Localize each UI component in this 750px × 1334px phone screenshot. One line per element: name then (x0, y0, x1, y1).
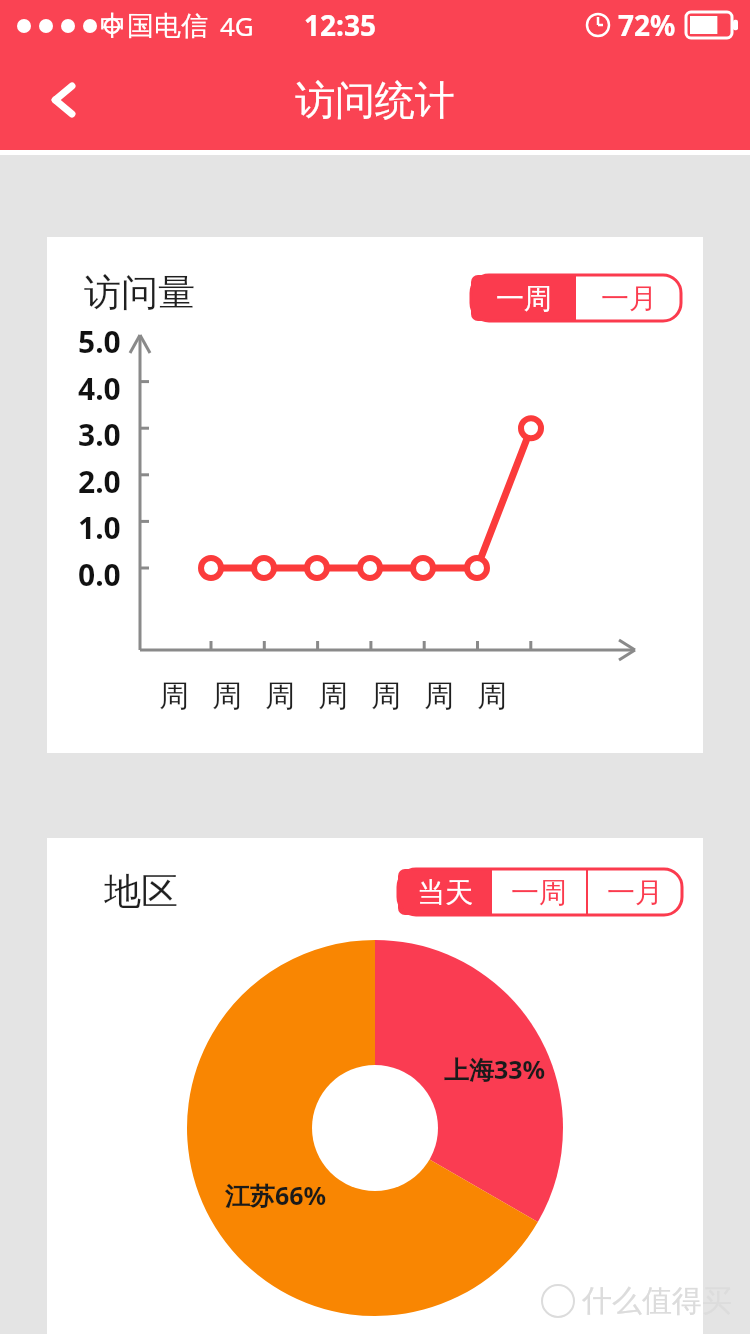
staticText: 周五 (371, 677, 424, 715)
staticText: 1.0 (78, 507, 121, 548)
staticText: 当天 (417, 875, 473, 910)
staticText: 上海33% (444, 1052, 546, 1086)
staticText: 周三 (265, 677, 318, 715)
staticText: 4G (220, 8, 254, 43)
other: Battery (686, 12, 738, 38)
staticText: 中国电信 (100, 9, 208, 43)
staticText: 0.0 (78, 554, 121, 595)
staticText: 周四 (318, 677, 371, 715)
staticText: 3.0 (78, 414, 121, 455)
button[interactable]: 一月 (588, 869, 682, 915)
other: Alarm (586, 13, 610, 37)
staticText: 一周 (511, 875, 567, 910)
button[interactable]: 一月 (576, 275, 681, 321)
staticText: 5.0 (78, 321, 121, 362)
staticText: 72% (618, 6, 676, 44)
staticText: 一月 (601, 281, 657, 316)
staticText: 12:35 (304, 6, 376, 44)
staticText: 一月 (607, 875, 663, 910)
button[interactable]: 当天 (398, 869, 492, 915)
staticText: 访问统计 (295, 75, 455, 125)
staticText: 4.0 (78, 368, 121, 409)
staticText: 2.0 (78, 461, 121, 502)
staticText: 地区 (104, 868, 178, 915)
staticText: 访问量 (84, 269, 195, 316)
staticText: 周一 (159, 677, 212, 715)
staticText: 什么值得买 (582, 1282, 732, 1320)
staticText: 周六 (424, 677, 477, 715)
staticText: 周日 (477, 677, 530, 715)
staticText: 一周 (496, 281, 552, 316)
button[interactable]: Back (28, 64, 100, 136)
button[interactable]: 一周 (492, 869, 586, 915)
button[interactable]: 一周 (471, 275, 576, 321)
staticText: 周二 (212, 677, 265, 715)
staticText: 江苏66% (225, 1178, 327, 1212)
